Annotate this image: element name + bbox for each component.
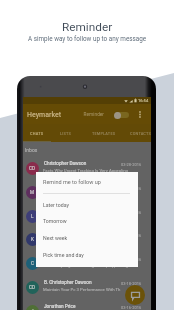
- staticText: CONTACTS: [130, 131, 151, 136]
- staticText: C: [31, 261, 34, 266]
- staticText: M: [30, 190, 35, 195]
- button[interactable]: TEMPLATES: [85, 124, 122, 142]
- staticText: 03-22-2016: [121, 233, 142, 238]
- staticText: J: [31, 309, 34, 310]
- button[interactable]: J: [23, 300, 151, 310]
- staticText: Heymarket: [27, 111, 62, 119]
- staticText: A simple way to follow up to any message: [28, 35, 147, 42]
- button[interactable]: Pick time and day: [36, 246, 138, 263]
- staticText: Remind me to follow up: [43, 179, 101, 185]
- staticText: 03-18-2016: [121, 281, 142, 286]
- staticText: Thanks for the update!: [43, 216, 87, 221]
- staticText: 03-16-2016: [121, 305, 142, 310]
- button[interactable]: More options: [136, 106, 144, 122]
- button[interactable]: New message: [125, 285, 145, 305]
- staticText: 03-24-2016: [121, 210, 142, 215]
- button[interactable]: CONTACTS: [122, 124, 159, 142]
- staticText: TEMPLATES: [92, 131, 116, 136]
- staticText: CHATS: [30, 131, 44, 136]
- staticText: 03-28-2016: [121, 162, 142, 167]
- staticText: 03-26-2016: [121, 186, 142, 191]
- staticText: Maintain Your Pc 3 Performance With Th: [43, 287, 121, 292]
- staticText: Tomorrow: [43, 218, 67, 224]
- staticText: CD: [29, 166, 36, 171]
- staticText: Facts Why Urgent Tracking Is Very Appeal…: [43, 168, 129, 173]
- staticText: Inbox: [25, 147, 38, 153]
- staticText: Can you send the file?: [43, 239, 85, 244]
- button[interactable]: L: [23, 205, 151, 229]
- button[interactable]: C: [23, 252, 151, 276]
- staticText: K: [31, 237, 34, 242]
- staticText: 16:54: [138, 98, 149, 103]
- staticText: Sounds good, talk tomorrow: [43, 192, 97, 197]
- staticText: B. Christopher Dawson: [44, 280, 92, 286]
- button[interactable]: K: [23, 228, 151, 252]
- staticText: Christopher Dawson: [44, 161, 87, 167]
- staticText: Next week: [43, 235, 68, 241]
- button[interactable]: LISTS: [51, 124, 80, 142]
- staticText: Carla Simmons: [44, 256, 76, 262]
- staticText: L: [31, 214, 34, 219]
- staticText: Kyle Morris: [44, 232, 68, 238]
- button[interactable]: CD: [23, 157, 151, 181]
- staticText: CD: [29, 285, 36, 290]
- staticText: LISTS: [60, 131, 71, 136]
- staticText: Reminder: [62, 20, 113, 34]
- staticText: Later today: [43, 202, 69, 208]
- button[interactable]: Tomorrow: [36, 212, 138, 229]
- staticText: Reminder: [82, 112, 104, 118]
- staticText: Facts Why Urgent Tracking Is Very Appeal…: [43, 263, 129, 268]
- button[interactable]: Next week: [36, 229, 138, 246]
- button[interactable]: Reminder toggle: [113, 111, 130, 119]
- button[interactable]: CHATS: [22, 124, 51, 142]
- staticText: Pick time and day: [43, 252, 84, 258]
- button[interactable]: M: [23, 181, 151, 205]
- button[interactable]: CD: [23, 276, 151, 300]
- staticText: 03-20-2016: [121, 257, 142, 262]
- button[interactable]: Later today: [36, 196, 138, 213]
- staticText: Jonathan Price: [44, 304, 76, 310]
